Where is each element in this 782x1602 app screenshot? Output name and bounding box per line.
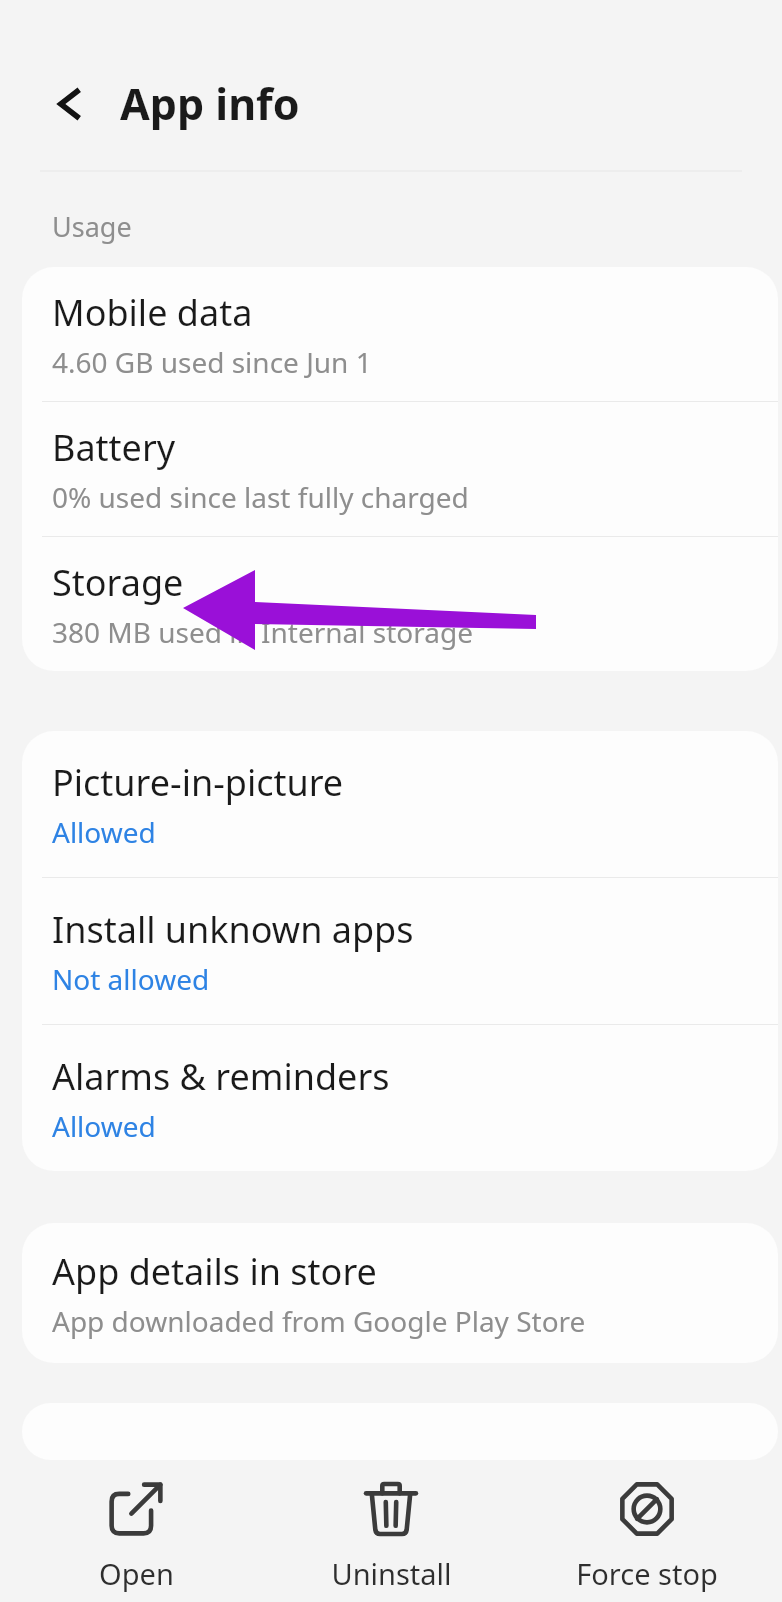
other: Open <box>107 1480 165 1538</box>
staticText: Not allowed <box>52 960 210 998</box>
staticText: Uninstall <box>331 1554 452 1593</box>
staticText: Battery <box>52 423 176 472</box>
button[interactable]: Uninstall <box>271 1460 511 1602</box>
staticText: Picture-in-picture <box>52 758 344 807</box>
button[interactable]: Storage <box>22 537 778 671</box>
staticText: Allowed <box>52 813 156 851</box>
staticText: Install unknown apps <box>52 905 414 954</box>
staticText: Force stop <box>576 1554 718 1593</box>
button[interactable]: Alarms & reminders <box>22 1025 778 1171</box>
staticText: 380 MB used in Internal storage <box>52 613 473 651</box>
staticText: Usage <box>52 208 132 245</box>
staticText: Storage <box>52 558 184 607</box>
staticText: 0% used since last fully charged <box>52 478 469 516</box>
button[interactable]: Force stop <box>527 1460 767 1602</box>
staticText: 4.60 GB used since Jun 1 <box>52 343 372 381</box>
staticText: App details in store <box>52 1247 377 1296</box>
button[interactable]: Mobile data <box>22 267 778 401</box>
button[interactable]: Open <box>16 1460 256 1602</box>
staticText: Alarms & reminders <box>52 1052 390 1101</box>
staticText: App downloaded from Google Play Store <box>52 1302 586 1340</box>
other: Force stop <box>618 1480 676 1538</box>
other: Uninstall <box>362 1480 420 1538</box>
button[interactable]: Back <box>34 60 106 148</box>
button[interactable]: Battery <box>22 402 778 536</box>
staticText: App info <box>120 74 300 133</box>
button[interactable]: App details in store <box>22 1223 778 1363</box>
staticText: Allowed <box>52 1107 156 1145</box>
button[interactable]: Install unknown apps <box>22 878 778 1024</box>
button[interactable]: Picture-in-picture <box>22 731 778 877</box>
staticText: Mobile data <box>52 288 253 337</box>
staticText: Open <box>99 1554 174 1593</box>
